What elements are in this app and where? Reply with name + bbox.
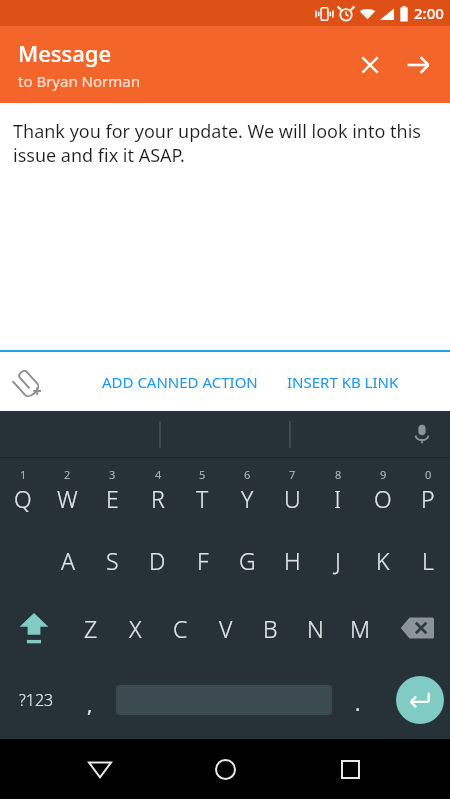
staticText: . xyxy=(355,690,361,717)
button[interactable]: C xyxy=(158,594,203,662)
staticText: X xyxy=(129,613,142,644)
button[interactable]: D xyxy=(135,526,180,594)
button[interactable]: 8 xyxy=(315,458,360,526)
button[interactable]: Backspace xyxy=(383,594,450,662)
staticText: A xyxy=(61,545,75,576)
button[interactable]: K xyxy=(360,526,405,594)
button[interactable]: 9 xyxy=(360,458,405,526)
button[interactable]: 6 xyxy=(225,458,270,526)
button[interactable]: Shift xyxy=(0,594,68,662)
staticText: O xyxy=(374,483,392,514)
button[interactable]: B xyxy=(248,594,293,662)
staticText: D xyxy=(149,545,166,576)
staticText: Q xyxy=(14,483,32,514)
staticText: 4 xyxy=(155,467,162,482)
staticText: 6 xyxy=(244,467,251,482)
button[interactable]: Add attachment xyxy=(8,360,52,404)
button[interactable]: 5 xyxy=(180,458,225,526)
staticText: 5 xyxy=(199,467,206,482)
staticText: C xyxy=(173,613,188,644)
staticText: ?123 xyxy=(19,689,54,711)
staticText: 1 xyxy=(20,467,27,482)
staticText: Z xyxy=(84,613,98,644)
staticText: G xyxy=(239,545,256,576)
staticText: Y xyxy=(241,483,254,514)
staticText: F xyxy=(197,545,209,576)
button[interactable]: L xyxy=(405,526,450,594)
staticText: K xyxy=(376,545,390,576)
staticText: 0 xyxy=(425,467,432,482)
button[interactable]: . xyxy=(339,662,377,738)
button[interactable]: , xyxy=(68,662,112,738)
staticText: ADD CANNED ACTION xyxy=(102,372,258,392)
button[interactable]: S xyxy=(90,526,135,594)
staticText: E xyxy=(106,483,119,514)
button[interactable]: Z xyxy=(68,594,113,662)
button[interactable]: 3 xyxy=(90,458,135,526)
button[interactable]: Voice input xyxy=(402,414,442,454)
button[interactable]: 7 xyxy=(270,458,315,526)
staticText: H xyxy=(284,545,301,576)
button[interactable]: M xyxy=(338,594,383,662)
staticText: M xyxy=(350,613,371,644)
staticText: INSERT KB LINK xyxy=(287,372,399,392)
button[interactable]: ?123 xyxy=(8,662,64,738)
button[interactable]: 2 xyxy=(45,458,90,526)
button[interactable]: X xyxy=(113,594,158,662)
staticText: B xyxy=(263,613,278,644)
staticText: S xyxy=(106,545,119,576)
staticText: Message xyxy=(18,38,112,68)
staticText: Thank you for your update. We will look … xyxy=(13,119,437,167)
button[interactable]: N xyxy=(293,594,338,662)
staticText: 2 xyxy=(64,467,71,482)
staticText: 7 xyxy=(289,467,296,482)
button[interactable]: A xyxy=(45,526,90,594)
staticText: R xyxy=(151,483,165,514)
button[interactable]: INSERT KB LINK xyxy=(283,364,403,400)
staticText: V xyxy=(219,613,233,644)
staticText: T xyxy=(196,483,209,514)
staticText: , xyxy=(87,691,93,718)
staticText: W xyxy=(57,483,78,514)
staticText: 2:00 xyxy=(414,3,444,23)
button[interactable]: ADD CANNED ACTION xyxy=(98,364,262,400)
staticText: P xyxy=(421,483,435,514)
staticText: U xyxy=(284,483,301,514)
button[interactable]: Recent apps xyxy=(300,739,450,799)
button[interactable]: Enter xyxy=(396,676,444,724)
staticText: 8 xyxy=(335,467,342,482)
button[interactable]: J xyxy=(315,526,360,594)
button[interactable]: Back xyxy=(0,739,150,799)
button[interactable]: 4 xyxy=(135,458,180,526)
button[interactable]: F xyxy=(180,526,225,594)
button[interactable]: Send xyxy=(394,41,442,89)
staticText: J xyxy=(335,545,341,576)
button[interactable]: 1 xyxy=(0,458,45,526)
staticText: N xyxy=(307,613,324,644)
button[interactable]: H xyxy=(270,526,315,594)
staticText: I xyxy=(334,483,342,514)
button[interactable]: V xyxy=(203,594,248,662)
staticText: L xyxy=(422,545,434,576)
staticText: to Bryan Norman xyxy=(18,71,140,91)
button[interactable]: Thank you for your update. We will look … xyxy=(0,103,450,350)
staticText: 3 xyxy=(109,467,116,482)
button[interactable]: G xyxy=(225,526,270,594)
button[interactable]: Close xyxy=(346,41,394,89)
button[interactable]: Home xyxy=(150,739,300,799)
button[interactable]: 0 xyxy=(405,458,450,526)
staticText: 9 xyxy=(380,467,387,482)
